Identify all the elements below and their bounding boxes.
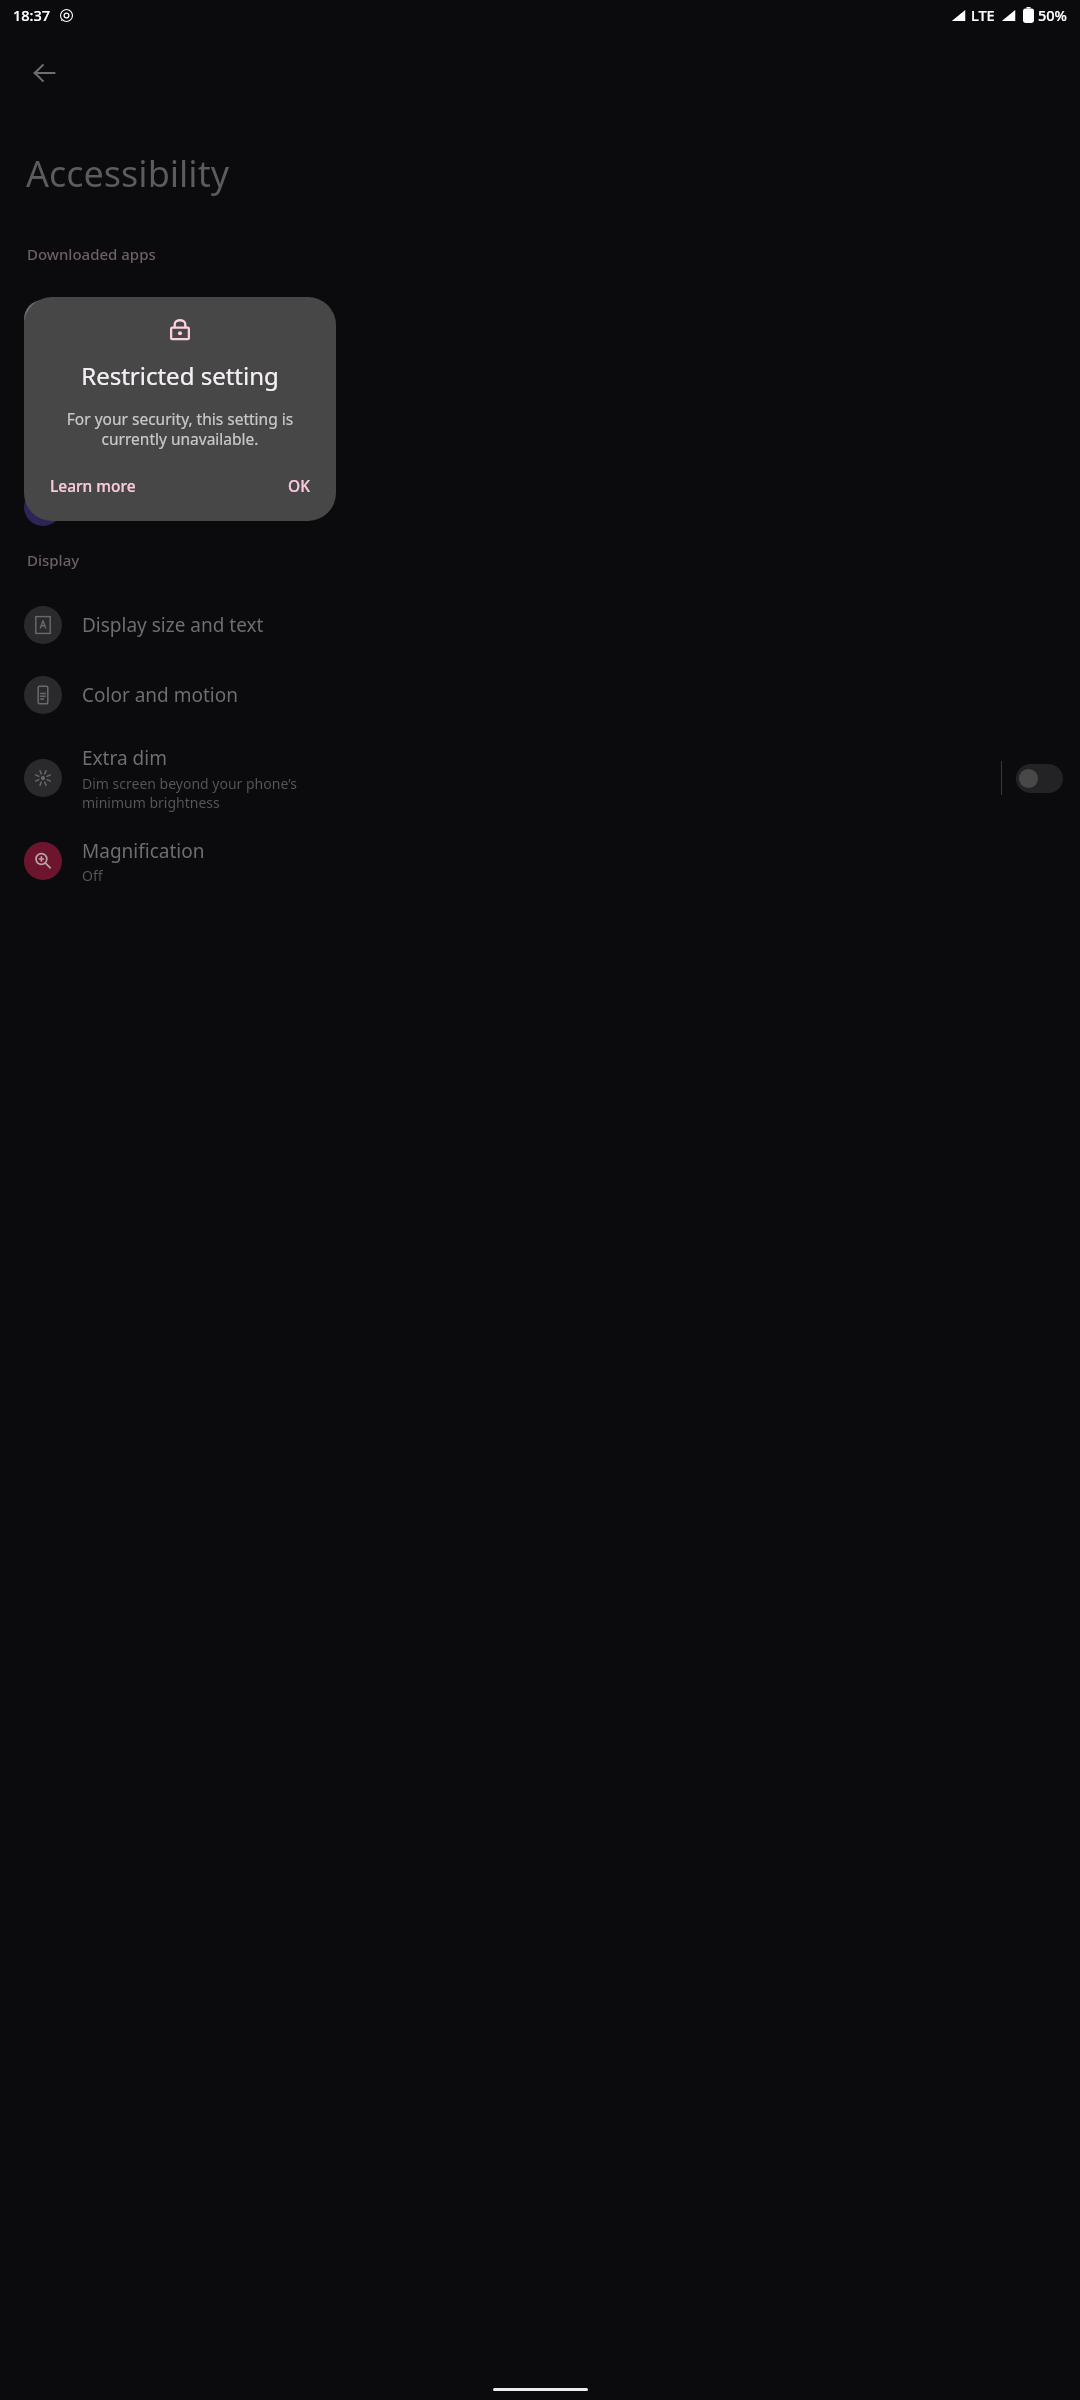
staticText: Color and motion (82, 682, 238, 708)
button[interactable]: Magnification (0, 826, 1080, 896)
staticText: Display size and text (82, 612, 264, 638)
staticText: LTE (971, 5, 995, 25)
staticText: Display (27, 550, 80, 570)
staticText: Intervalometer (82, 296, 217, 322)
button[interactable]: Display size and text (0, 590, 1080, 660)
staticText: 50% (1038, 5, 1067, 25)
button[interactable]: Color and motion (0, 660, 1080, 730)
button[interactable]: Back (20, 49, 68, 97)
button[interactable] (0, 472, 1080, 542)
button[interactable] (0, 354, 1080, 424)
staticText: Accessibility (26, 149, 230, 198)
staticText: For your security, this setting is curre… (48, 408, 312, 450)
staticText: 18:37 (13, 5, 51, 25)
staticText: Learn more (50, 475, 136, 496)
staticText: Magnification (82, 838, 205, 864)
button[interactable]: Intervalometer (0, 284, 1080, 354)
button[interactable]: OK (274, 466, 324, 505)
staticText: Extra dim (82, 745, 167, 771)
button[interactable]: Extra dim toggle (1016, 764, 1063, 793)
button[interactable]: Extra dim (0, 730, 1001, 826)
staticText: Dim screen beyond your phone’s minimum b… (82, 774, 297, 812)
staticText: Downloaded apps (27, 244, 156, 264)
staticText: Off (82, 866, 103, 885)
staticText: OK (288, 475, 310, 496)
button[interactable]: Learn more (36, 466, 150, 505)
staticText: Restricted setting (24, 359, 336, 392)
